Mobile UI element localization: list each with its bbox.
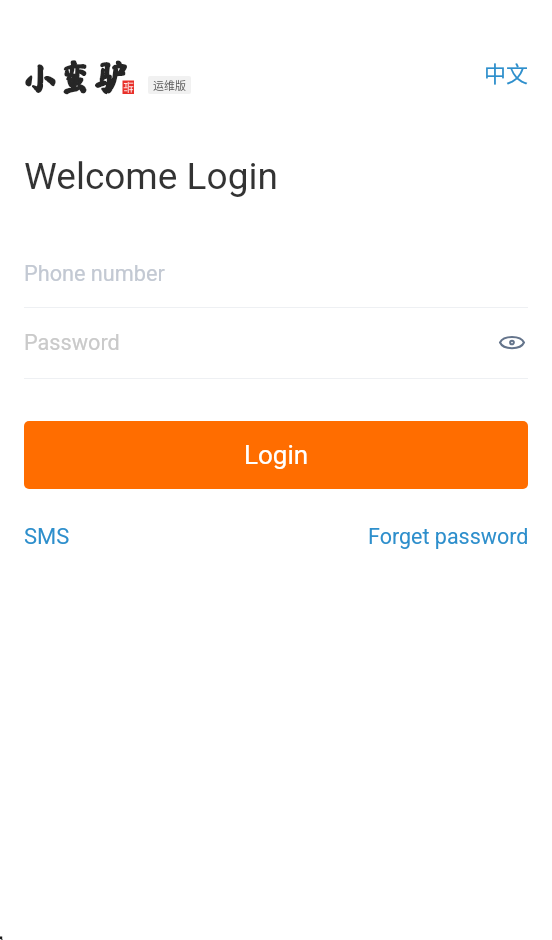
staticText: SMS <box>24 524 70 550</box>
button[interactable]: Login <box>24 421 528 489</box>
staticText: Phone number <box>24 261 165 286</box>
staticText: Welcome Login <box>24 155 278 198</box>
button[interactable]: SMS <box>24 524 70 550</box>
staticText: 中文 <box>484 56 529 88</box>
staticText: Login <box>244 440 309 470</box>
button[interactable]: Forget password <box>368 524 529 549</box>
button[interactable]: Show password <box>492 322 532 362</box>
button[interactable]: 中文 <box>476 50 537 94</box>
staticText: 运维版 <box>153 77 186 93</box>
staticText: Password <box>24 330 120 355</box>
staticText: Forget password <box>368 524 529 549</box>
